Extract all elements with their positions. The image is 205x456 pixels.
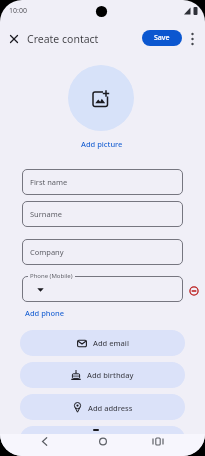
staticText: 10:00 bbox=[9, 6, 27, 16]
staticText: Add email bbox=[93, 338, 129, 348]
staticText: Add picture bbox=[81, 139, 123, 149]
staticText: Save bbox=[154, 33, 170, 43]
staticText: First name bbox=[30, 177, 68, 187]
staticText: Company bbox=[30, 247, 64, 257]
staticText: Add phone bbox=[25, 308, 65, 318]
staticText: Add address bbox=[88, 403, 133, 413]
staticText: Surname bbox=[30, 209, 62, 219]
staticText: Add birthday bbox=[87, 370, 134, 380]
staticText: Create contact bbox=[27, 32, 99, 46]
staticText: Phone (Mobile) bbox=[30, 272, 73, 280]
